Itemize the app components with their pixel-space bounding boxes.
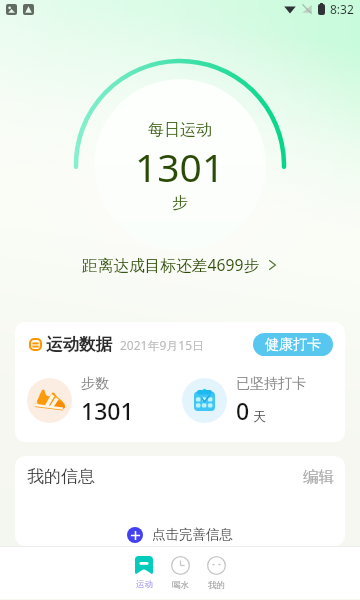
staticText: 步 <box>172 193 188 213</box>
staticText: 1301 <box>135 140 225 193</box>
staticText: 距离达成目标还差4699步 <box>82 254 260 275</box>
staticText: 0 <box>236 395 250 426</box>
button[interactable]: 健康打卡 <box>253 333 333 356</box>
button[interactable]: 运动 <box>126 554 162 592</box>
button[interactable]: 喝水 <box>162 554 198 593</box>
staticText: 点击完善信息 <box>152 526 233 543</box>
staticText: 已坚持打卡 <box>236 375 306 393</box>
staticText: 运动数据 <box>46 334 112 355</box>
staticText: 天 <box>253 408 266 424</box>
staticText: 8:32 <box>330 1 354 17</box>
staticText: 2021年9月15日 <box>120 337 205 353</box>
staticText: 喝水 <box>172 580 189 591</box>
button[interactable]: 编辑 <box>303 467 334 487</box>
staticText: 健康打卡 <box>265 336 321 354</box>
staticText: 每日运动 <box>148 120 212 140</box>
button[interactable]: 点击完善信息 <box>15 526 345 546</box>
other: 运动 <box>135 556 153 574</box>
staticText: 运动 <box>136 579 153 590</box>
staticText: 步数 <box>81 375 109 393</box>
button[interactable]: 我的 <box>198 554 234 593</box>
button[interactable]: 距离达成目标还差4699步 <box>0 249 360 278</box>
staticText: 我的 <box>208 580 225 591</box>
staticText: 我的信息 <box>27 466 95 487</box>
staticText: 1301 <box>81 395 134 426</box>
